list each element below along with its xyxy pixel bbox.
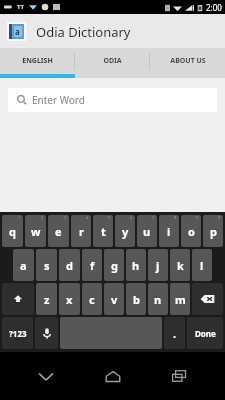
button[interactable]: z	[36, 283, 57, 315]
button[interactable]: d	[59, 249, 80, 281]
staticText: 9	[196, 215, 199, 220]
staticText: n	[154, 292, 162, 307]
button[interactable]: t	[93, 215, 113, 247]
staticText: f	[90, 258, 95, 273]
staticText: g	[111, 258, 118, 273]
button[interactable]: u	[137, 215, 157, 247]
staticText: p	[210, 224, 217, 239]
button[interactable]: ODIA	[75, 48, 150, 74]
staticText: ?123	[9, 328, 27, 339]
button[interactable]: v	[104, 283, 124, 315]
button[interactable]: a	[13, 249, 34, 281]
staticText: 3	[64, 215, 67, 220]
staticText: h	[132, 258, 140, 273]
button[interactable]: Voice input	[35, 317, 58, 349]
staticText: Done	[195, 328, 216, 339]
button[interactable]: x	[59, 283, 80, 315]
staticText: s	[44, 258, 50, 273]
button[interactable]: q	[2, 215, 23, 247]
staticText: ABOUT US	[170, 56, 206, 66]
staticText: 2	[41, 215, 44, 220]
button[interactable]: n	[148, 283, 168, 315]
button[interactable]: j	[148, 249, 168, 281]
staticText: b	[133, 292, 140, 307]
staticText: d	[66, 258, 73, 273]
staticText: r	[79, 224, 84, 239]
button[interactable]: .	[164, 317, 185, 349]
button[interactable]: b	[126, 283, 146, 315]
button[interactable]: Shift	[2, 283, 34, 315]
staticText: ODIA	[103, 56, 122, 66]
staticText: o	[188, 224, 195, 239]
staticText: l	[200, 258, 204, 273]
button[interactable]: App icon	[7, 22, 26, 41]
staticText: 5	[108, 215, 111, 220]
button[interactable]: ?123	[2, 317, 33, 349]
staticText: t	[101, 224, 106, 239]
staticText: Odia Dictionary	[36, 23, 131, 41]
button[interactable]: Backspace	[192, 283, 223, 315]
staticText: y	[122, 224, 129, 239]
staticText: u	[143, 224, 151, 239]
staticText: k	[177, 258, 184, 273]
staticText: c	[89, 292, 95, 307]
staticText: a	[15, 26, 20, 37]
staticText: z	[44, 292, 50, 307]
staticText: x	[66, 292, 73, 307]
staticText: e	[55, 224, 62, 239]
button[interactable]: k	[170, 249, 190, 281]
button[interactable]: g	[104, 249, 124, 281]
button[interactable]: r	[71, 215, 91, 247]
staticText: w	[31, 224, 41, 239]
staticText: .	[173, 326, 177, 341]
staticText: a	[20, 258, 27, 273]
button[interactable]: p	[203, 215, 223, 247]
staticText: q	[9, 224, 16, 239]
staticText: TT	[17, 3, 25, 11]
staticText: 2:00	[206, 2, 222, 13]
button[interactable]: l	[192, 249, 212, 281]
button[interactable]: e	[48, 215, 69, 247]
button[interactable]: h	[126, 249, 146, 281]
staticText: v	[111, 292, 118, 307]
staticText: ENGLISH	[22, 56, 53, 66]
staticText: 0	[218, 215, 221, 220]
button[interactable]: Home	[93, 364, 133, 388]
button[interactable]: Done	[187, 317, 223, 349]
button[interactable]: c	[82, 283, 102, 315]
staticText: i	[167, 224, 171, 239]
button[interactable]: m	[170, 283, 190, 315]
button[interactable]: Back	[26, 364, 66, 388]
staticText: 8	[174, 215, 177, 220]
button[interactable]: o	[181, 215, 201, 247]
button[interactable]: w	[25, 215, 46, 247]
staticText: 6	[130, 215, 133, 220]
button[interactable]: f	[82, 249, 102, 281]
button[interactable]: ABOUT US	[150, 48, 225, 74]
button[interactable]: Recent apps	[159, 364, 199, 388]
staticText: 7	[152, 215, 155, 220]
staticText: 4	[86, 215, 89, 220]
staticText: 1	[18, 215, 21, 220]
button[interactable]: i	[159, 215, 179, 247]
button[interactable]: Enter Word	[8, 88, 217, 112]
button[interactable]: ENGLISH	[0, 48, 75, 74]
button[interactable]: y	[115, 215, 135, 247]
button[interactable]: s	[36, 249, 57, 281]
staticText: m	[175, 292, 186, 307]
staticText: j	[156, 258, 160, 273]
staticText: Enter Word	[32, 93, 85, 107]
